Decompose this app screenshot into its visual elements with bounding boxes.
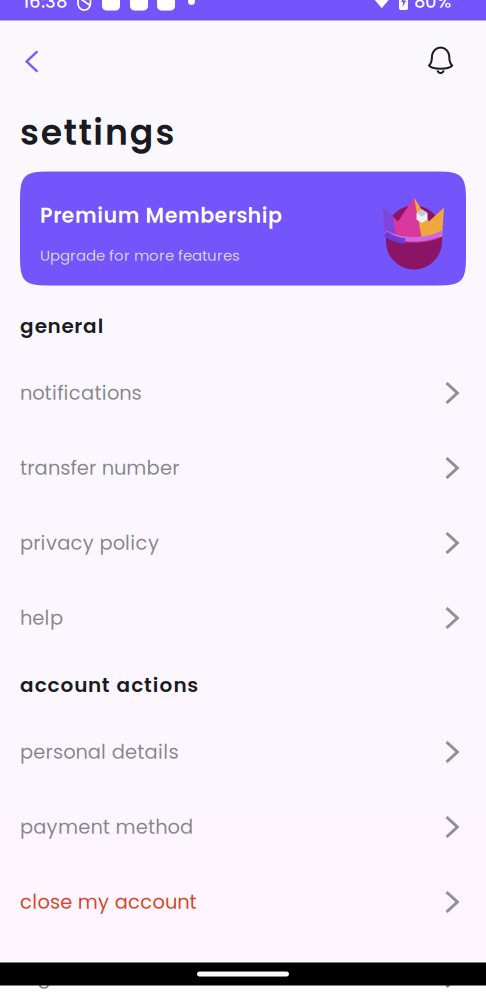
staticText: help	[20, 604, 63, 632]
staticText: settings	[20, 108, 175, 157]
button[interactable]: notifications	[0, 355, 486, 430]
button[interactable]: Notifications	[404, 20, 478, 102]
staticText: Upgrade for more features	[40, 245, 240, 266]
staticText: transfer number	[20, 454, 179, 482]
button[interactable]: help	[0, 580, 486, 655]
staticText: logout	[20, 963, 82, 991]
button[interactable]: close my account	[0, 864, 486, 939]
button[interactable]: personal details	[0, 714, 486, 789]
button[interactable]: Back	[2, 20, 62, 102]
button[interactable]: Premium Membership	[20, 171, 466, 285]
staticText: account actions	[20, 671, 198, 699]
staticText: Premium Membership	[40, 201, 282, 230]
staticText: privacy policy	[20, 529, 159, 557]
button[interactable]: logout	[0, 939, 486, 1000]
staticText: personal details	[20, 738, 178, 766]
staticText: payment method	[20, 813, 193, 841]
staticText: 16:38	[23, 0, 67, 14]
button[interactable]: payment method	[0, 789, 486, 864]
staticText: general	[20, 312, 104, 340]
button[interactable]: privacy policy	[0, 505, 486, 580]
button[interactable]: transfer number	[0, 430, 486, 505]
staticText: notifications	[20, 379, 142, 407]
staticText: close my account	[20, 888, 196, 916]
staticText: 80%	[414, 0, 451, 14]
